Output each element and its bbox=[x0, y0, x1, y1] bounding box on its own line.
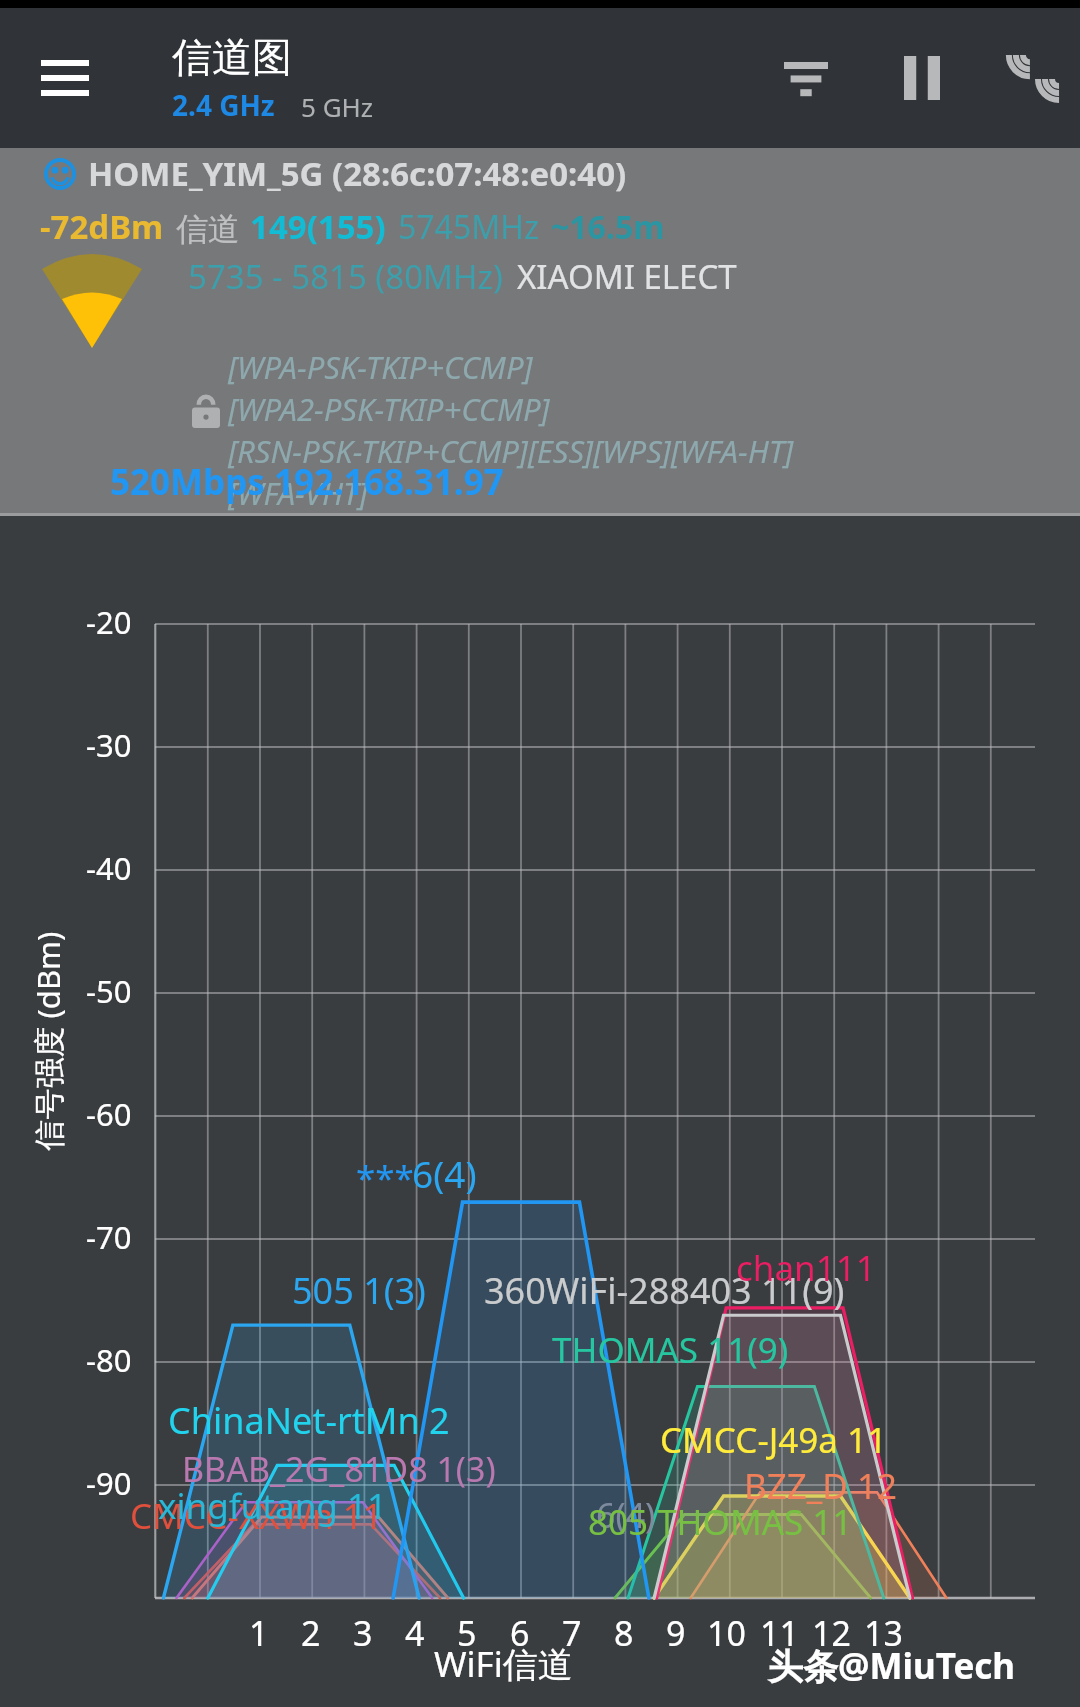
staticText: -70 bbox=[86, 1216, 132, 1258]
staticText: 6 bbox=[510, 1610, 530, 1656]
staticText: 信道图 bbox=[172, 32, 292, 82]
staticText: CMCC-XXWn 11 bbox=[130, 1492, 383, 1540]
staticText: THOMAS 11(9) bbox=[552, 1326, 789, 1374]
staticText: *** bbox=[356, 1154, 414, 1202]
button[interactable]: Scan WiFi bbox=[992, 38, 1072, 118]
staticText: -80 bbox=[86, 1339, 132, 1381]
staticText: -50 bbox=[86, 970, 132, 1012]
staticText: 5745MHz bbox=[398, 205, 539, 249]
staticText: 11 bbox=[760, 1610, 799, 1656]
staticText: 149(155) bbox=[250, 204, 386, 249]
staticText: 9 bbox=[666, 1610, 686, 1656]
staticText: 5 bbox=[457, 1610, 477, 1656]
staticText: 6(4) bbox=[596, 1492, 656, 1538]
staticText: ~16.5m bbox=[551, 205, 665, 249]
staticText: 2 bbox=[301, 1610, 321, 1656]
staticText: 2.4 GHz bbox=[172, 86, 275, 124]
staticText: WiFi信道 bbox=[434, 1640, 573, 1688]
staticText: -30 bbox=[86, 724, 132, 766]
staticText: -40 bbox=[86, 847, 132, 889]
staticText: BZZ_D 12 bbox=[744, 1462, 898, 1510]
button[interactable]: HOME_YIM_5G (28:6c:07:48:e0:40) bbox=[0, 148, 1080, 513]
staticText: HOME_YIM_5G (28:6c:07:48:e0:40) bbox=[88, 151, 627, 196]
staticText: [WFA-VHT] bbox=[228, 472, 368, 514]
staticText: 12 bbox=[812, 1610, 851, 1656]
staticText: -60 bbox=[86, 1093, 132, 1135]
staticText: 805 THOMAS 11 bbox=[588, 1498, 853, 1546]
staticText: [WPA2-PSK-TKIP+CCMP] bbox=[228, 388, 550, 430]
staticText: 360WiFi-288403 11(9) bbox=[484, 1266, 845, 1315]
staticText: 13 bbox=[864, 1610, 903, 1656]
staticText: [RSN-PSK-TKIP+CCMP][ESS][WPS][WFA-HT] bbox=[228, 430, 794, 472]
staticText: 3 bbox=[353, 1610, 373, 1656]
staticText: 1 bbox=[249, 1610, 269, 1656]
staticText: -20 bbox=[86, 601, 132, 643]
staticText: ChinaNet-rtMn 2 bbox=[168, 1396, 450, 1445]
staticText: 5 GHz bbox=[301, 89, 374, 124]
staticText: 头条@MiuTech bbox=[768, 1642, 1016, 1690]
staticText: [WPA-PSK-TKIP+CCMP] bbox=[228, 346, 533, 388]
staticText: BBAB_2G_81D8 1(3) bbox=[182, 1446, 496, 1492]
staticText: XIAOMI ELECT bbox=[517, 254, 737, 299]
staticText: 4 bbox=[405, 1610, 425, 1656]
staticText: xingfutang 11 bbox=[158, 1482, 387, 1530]
staticText: 6(4) bbox=[412, 1148, 477, 1198]
staticText: chan111 bbox=[736, 1244, 876, 1292]
staticText: 505 1(3) bbox=[292, 1266, 426, 1315]
staticText: 520Mbps 192.168.31.97 bbox=[110, 458, 504, 506]
button[interactable]: Pause bbox=[882, 38, 962, 118]
staticText: 7 bbox=[562, 1610, 582, 1656]
staticText: -72dBm bbox=[40, 204, 164, 249]
button[interactable]: 5 GHz bbox=[301, 89, 374, 124]
staticText: -90 bbox=[86, 1462, 132, 1504]
staticText: 信号强度 (dBm) bbox=[26, 931, 68, 1150]
staticText: 8 bbox=[614, 1610, 634, 1656]
button[interactable]: Filter bbox=[766, 38, 846, 118]
staticText: 信道 bbox=[176, 209, 240, 249]
button[interactable]: Open navigation menu bbox=[22, 35, 108, 121]
staticText: 10 bbox=[707, 1610, 746, 1656]
button[interactable]: 2.4 GHz bbox=[172, 86, 275, 124]
staticText: 5735 - 5815 (80MHz) bbox=[188, 254, 503, 299]
staticText: CMCC-J49a 11 bbox=[660, 1416, 888, 1464]
